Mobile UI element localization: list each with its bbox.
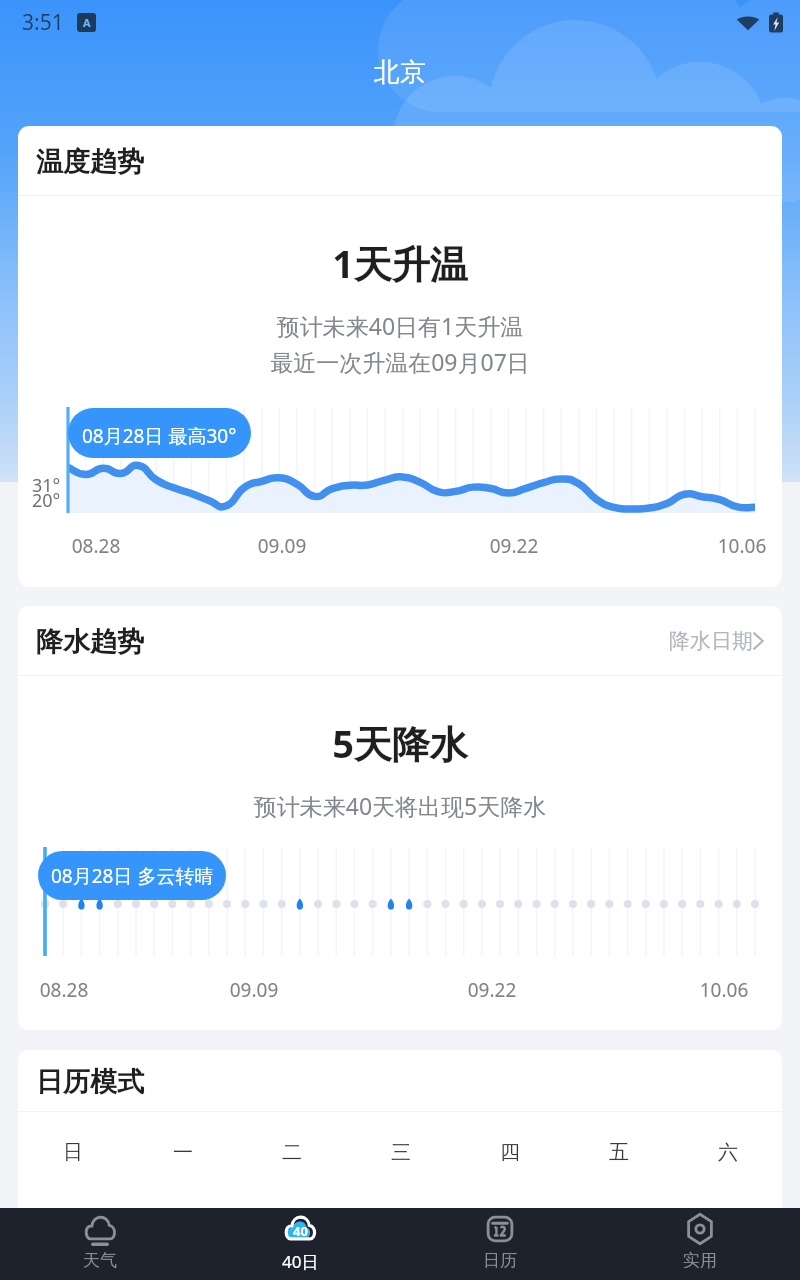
staticText: 温度趋势 [36,145,144,179]
staticText: 日 [63,1140,83,1165]
staticText: 10.06 [715,533,769,559]
staticText: 日历 [483,1250,517,1271]
staticText: 09.09 [255,533,309,559]
staticText: 一 [173,1140,193,1165]
staticText: 1天升温 [18,237,782,289]
staticText: A [83,15,91,30]
staticText: 日历模式 [36,1065,144,1099]
staticText: 08.28 [69,533,123,559]
staticText: 二 [282,1140,302,1165]
button[interactable]: 40 day [200,1208,400,1280]
staticText: 六 [718,1140,738,1165]
other: 40 day [282,1211,318,1247]
staticText: 北京 [374,56,426,89]
staticText: 08.28 [37,977,91,1003]
staticText: 五 [609,1140,629,1165]
staticText: 09.22 [465,977,519,1003]
staticText: 天气 [83,1250,117,1271]
staticText: 20° [32,488,61,513]
staticText: 10.06 [697,977,751,1003]
staticText: 5天降水 [18,717,782,769]
staticText: 降水日期 [669,628,753,654]
staticText: 31° [32,473,61,498]
staticText: 40 [293,1222,308,1240]
staticText: 预计未来40天将出现5天降水 [18,790,782,821]
button[interactable]: Weather [0,1208,200,1280]
staticText: 08月28日 多云转晴 [51,863,214,889]
staticText: 四 [500,1140,520,1165]
staticText: 08月28日 最高30° [82,423,237,449]
staticText: 降水趋势 [36,625,144,659]
staticText: 实用 [683,1250,717,1271]
staticText: 3:51 [22,8,64,37]
staticText: 09.09 [227,977,281,1003]
staticText: 09.22 [487,533,541,559]
button[interactable]: Tools [600,1208,800,1280]
staticText: 三 [391,1140,411,1165]
staticText: 最近一次升温在09月07日 [18,346,782,377]
staticText: 预计未来40日有1天升温 [18,310,782,341]
other: Tools [682,1211,718,1247]
other: Weather [82,1211,118,1247]
staticText: 40日 [282,1250,319,1273]
other: Calendar [482,1211,518,1247]
button[interactable]: 降水日期 [476,628,782,654]
button[interactable]: Calendar [400,1208,600,1280]
